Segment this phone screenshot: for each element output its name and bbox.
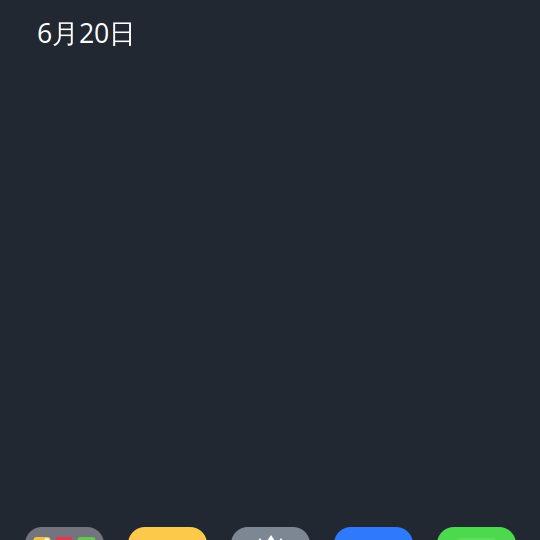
button[interactable]: Photos xyxy=(25,527,104,540)
button[interactable]: Notes xyxy=(128,527,207,540)
button[interactable]: Messages xyxy=(437,527,516,540)
button[interactable]: Calendar xyxy=(334,527,413,540)
staticText: 6月20日 xyxy=(37,15,136,50)
button[interactable]: Weather xyxy=(231,527,310,540)
